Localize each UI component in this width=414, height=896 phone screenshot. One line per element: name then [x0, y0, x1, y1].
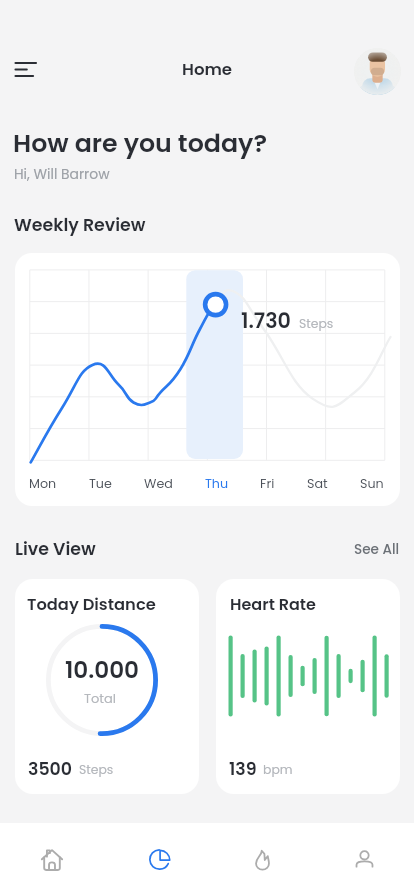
button[interactable]: Menu	[4, 48, 46, 90]
button[interactable]: Activity	[236, 823, 288, 896]
button[interactable]: Profile	[354, 48, 401, 95]
staticText: How are you today?	[13, 125, 268, 160]
staticText: Live View	[15, 537, 96, 561]
staticText: Heart Rate	[230, 593, 316, 615]
staticText: Steps	[79, 761, 114, 778]
staticText: Home	[182, 58, 233, 81]
staticText: 3500	[28, 757, 73, 781]
staticText: Mon	[29, 475, 57, 493]
staticText: Tue	[89, 475, 112, 493]
staticText: 1.730	[241, 306, 291, 335]
staticText: Steps	[299, 315, 334, 332]
staticText: Wed	[144, 475, 173, 493]
button[interactable]: Profile	[338, 823, 390, 896]
button[interactable]: See All	[354, 540, 400, 559]
button[interactable]: Home	[26, 823, 78, 896]
staticText: Hi, Will Barrow	[14, 164, 110, 183]
staticText: bpm	[263, 761, 293, 778]
button[interactable]: Statistics	[133, 823, 185, 896]
staticText: Sat	[307, 475, 328, 493]
staticText: See All	[354, 540, 400, 559]
staticText: Weekly Review	[14, 213, 146, 237]
staticText: Thu	[205, 475, 229, 493]
staticText: Sun	[360, 475, 384, 493]
staticText: 139	[229, 757, 257, 781]
staticText: Today Distance	[27, 593, 156, 616]
staticText: Fri	[260, 475, 275, 493]
staticText: 10.000	[65, 654, 140, 686]
staticText: Total	[84, 689, 117, 707]
